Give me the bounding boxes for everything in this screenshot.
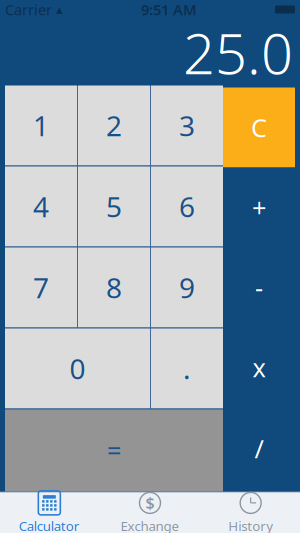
button[interactable]: 3 [151, 85, 223, 165]
button[interactable]: 5 [78, 166, 150, 246]
staticText: 1 [33, 107, 49, 144]
button[interactable]: 9 [151, 247, 223, 327]
button[interactable]: Calculator [0, 492, 100, 533]
staticText: 2 [106, 107, 122, 144]
button[interactable]: 7 [5, 247, 77, 327]
staticText: = [107, 434, 121, 467]
staticText: 0 [69, 350, 85, 387]
button[interactable]: 4 [5, 166, 77, 246]
button[interactable]: 8 [78, 247, 150, 327]
staticText: 7 [33, 269, 49, 306]
staticText: 6 [179, 188, 195, 225]
staticText: . [183, 350, 191, 387]
button[interactable]: 1 [5, 85, 77, 165]
staticText: 9:51 AM [141, 0, 197, 19]
staticText: / [254, 432, 263, 465]
staticText: Carrier [5, 0, 52, 19]
staticText: + [252, 191, 266, 224]
staticText: 9 [179, 269, 195, 306]
button[interactable]: x [223, 327, 295, 407]
button[interactable]: - [223, 247, 295, 327]
staticText: 8 [106, 269, 122, 306]
button[interactable]: 6 [151, 166, 223, 246]
button[interactable]: / [223, 407, 295, 489]
staticText: $ [145, 492, 154, 513]
staticText: History [228, 517, 273, 533]
button[interactable]: 2 [78, 85, 150, 165]
button[interactable]: C [223, 87, 295, 167]
staticText: ▴ [56, 2, 63, 17]
staticText: x [252, 351, 265, 384]
button[interactable]: History [200, 492, 300, 533]
button[interactable]: $ [100, 492, 200, 533]
staticText: Exchange [120, 517, 179, 533]
staticText: 5 [106, 188, 122, 225]
button[interactable]: + [223, 167, 295, 247]
staticText: - [255, 271, 263, 304]
staticText: 25.0 [183, 15, 293, 90]
staticText: 4 [33, 188, 49, 225]
staticText: Calculator [19, 517, 80, 533]
button[interactable]: 0 [5, 328, 150, 408]
button[interactable]: . [151, 328, 223, 408]
staticText: C [251, 111, 267, 144]
button[interactable]: = [5, 409, 223, 491]
staticText: 3 [179, 107, 195, 144]
